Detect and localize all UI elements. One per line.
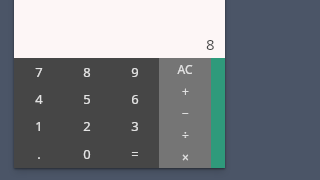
button[interactable]: 8 xyxy=(63,58,111,85)
staticText: − xyxy=(182,105,189,121)
button[interactable]: = xyxy=(111,140,159,168)
button[interactable]: . xyxy=(14,140,63,168)
staticText: 4 xyxy=(35,90,43,108)
button[interactable]: × xyxy=(159,146,211,168)
button[interactable]: 2 xyxy=(63,112,111,140)
button[interactable]: 5 xyxy=(63,85,111,112)
staticText: + xyxy=(182,83,189,99)
button[interactable]: 1 xyxy=(14,112,63,140)
button[interactable]: − xyxy=(159,102,211,124)
staticText: × xyxy=(182,149,189,165)
staticText: 7 xyxy=(35,63,43,81)
staticText: 9 xyxy=(131,63,139,81)
button[interactable]: 9 xyxy=(111,58,159,85)
staticText: 6 xyxy=(131,90,139,108)
button[interactable]: 0 xyxy=(63,140,111,168)
button[interactable]: ÷ xyxy=(159,124,211,146)
staticText: 2 xyxy=(83,117,91,135)
button[interactable]: 7 xyxy=(14,58,63,85)
button[interactable]: + xyxy=(159,80,211,102)
staticText: . xyxy=(37,145,41,163)
button[interactable]: 3 xyxy=(111,112,159,140)
staticText: 8 xyxy=(83,63,91,81)
staticText: 3 xyxy=(131,117,139,135)
button[interactable]: 4 xyxy=(14,85,63,112)
staticText: 1 xyxy=(35,117,43,135)
staticText: 8 xyxy=(206,34,215,54)
button[interactable]: AC xyxy=(159,58,211,80)
staticText: 5 xyxy=(83,90,91,108)
button[interactable]: 6 xyxy=(111,85,159,112)
staticText: AC xyxy=(177,61,193,77)
staticText: 0 xyxy=(83,145,91,163)
staticText: ÷ xyxy=(182,127,189,143)
staticText: = xyxy=(131,145,139,163)
